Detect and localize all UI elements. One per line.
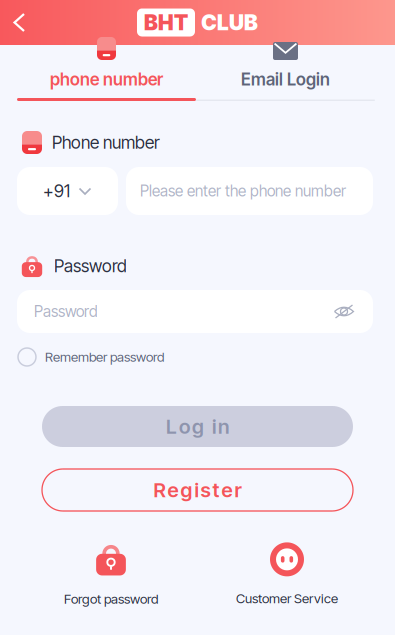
button[interactable]: Back bbox=[0, 0, 40, 45]
staticText: CLUB bbox=[201, 10, 258, 35]
staticText: Customer Service bbox=[236, 590, 338, 606]
staticText: Register bbox=[153, 478, 241, 502]
button[interactable]: Customer Service bbox=[199, 542, 375, 606]
button[interactable]: +91 bbox=[17, 167, 118, 215]
button[interactable]: Please enter the phone number bbox=[126, 167, 373, 215]
staticText: Email Login bbox=[241, 69, 330, 90]
staticText: Remember password bbox=[45, 349, 164, 365]
staticText: Password bbox=[34, 302, 98, 321]
button[interactable]: Register bbox=[42, 469, 353, 511]
staticText: Forgot password bbox=[64, 591, 158, 607]
staticText: Phone number bbox=[52, 132, 160, 153]
button[interactable]: Log in bbox=[42, 406, 353, 447]
staticText: +91 bbox=[43, 180, 70, 201]
staticText: Log in bbox=[166, 414, 229, 439]
staticText: Password bbox=[54, 255, 127, 276]
button[interactable]: Password bbox=[17, 290, 373, 333]
button[interactable]: Email Login bbox=[196, 45, 375, 101]
button[interactable]: Remember password bbox=[18, 348, 164, 366]
staticText: Please enter the phone number bbox=[140, 182, 346, 200]
button[interactable]: Forgot password bbox=[23, 542, 199, 607]
staticText: phone number bbox=[50, 69, 163, 90]
staticText: BHT bbox=[144, 10, 188, 35]
button[interactable]: phone number bbox=[17, 45, 196, 101]
